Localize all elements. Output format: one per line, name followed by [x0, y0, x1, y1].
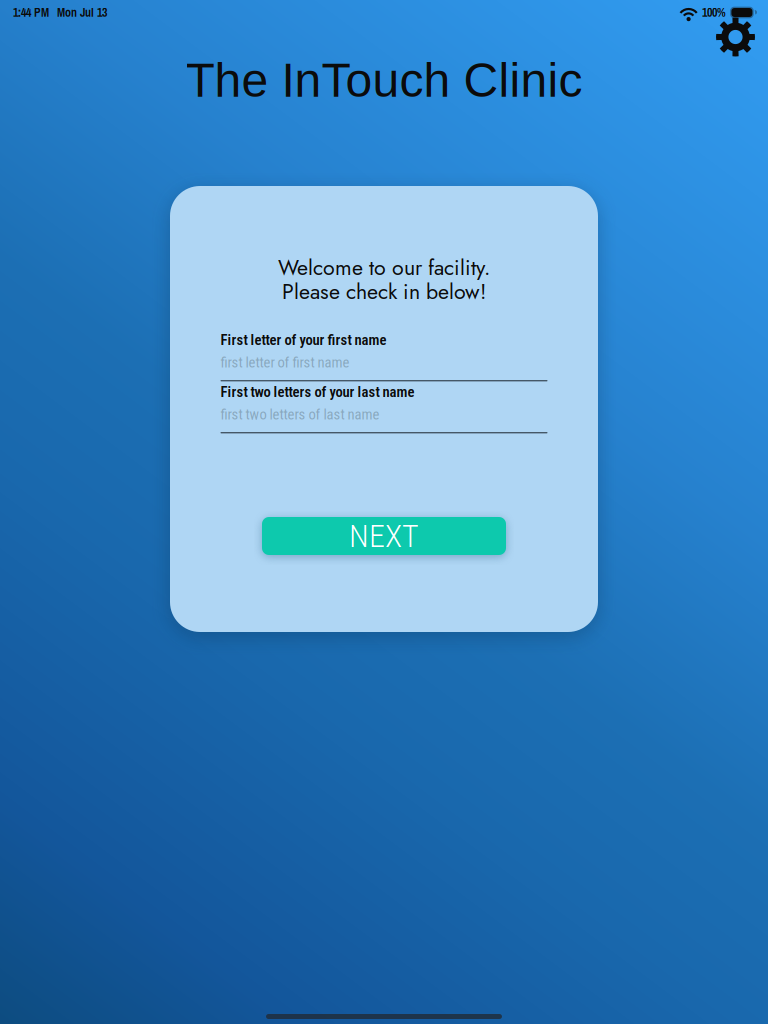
button[interactable]: first two letters of last name	[220, 407, 547, 433]
staticText: first two letters of last name	[220, 406, 379, 423]
staticText: Please check in below!	[282, 276, 486, 307]
staticText: Mon Jul 13	[57, 4, 107, 21]
staticText: 1:44 PM	[13, 4, 49, 21]
staticText: First two letters of your last name	[220, 383, 414, 401]
staticText: First letter of your first name	[220, 331, 386, 349]
staticText: Welcome to our facility.	[278, 252, 490, 283]
staticText: The InTouch Clinic	[185, 53, 582, 107]
button[interactable]: first letter of first name	[220, 355, 547, 381]
button[interactable]: NEXT	[262, 517, 506, 555]
staticText: NEXT	[349, 517, 419, 555]
staticText: 100%	[702, 4, 726, 21]
staticText: first letter of first name	[220, 354, 349, 371]
button[interactable]: Settings	[716, 2, 768, 59]
